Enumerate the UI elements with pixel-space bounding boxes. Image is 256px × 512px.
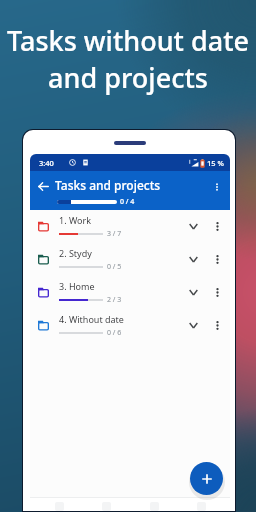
button[interactable]: Navigation item	[88, 502, 124, 511]
button[interactable]: More options	[205, 243, 229, 276]
button[interactable]: Expand	[180, 210, 206, 243]
button[interactable]: Expand	[180, 309, 206, 342]
staticText: and projects	[48, 59, 208, 96]
button[interactable]: More options	[205, 276, 229, 309]
button[interactable]: More options	[205, 309, 229, 342]
button[interactable]: Expand	[180, 276, 206, 309]
staticText: 1. Work	[59, 214, 92, 226]
staticText: 0 / 4	[120, 197, 135, 207]
button[interactable]: Navigation item	[183, 502, 219, 511]
staticText: Tasks and projects	[55, 177, 161, 193]
staticText: 3 / 7	[107, 229, 122, 239]
staticText: 2. Stydy	[59, 247, 92, 259]
staticText: 3:40	[39, 158, 54, 168]
button[interactable]: 3. Home	[30, 276, 230, 309]
staticText: 2 / 3	[107, 295, 122, 305]
button[interactable]: 1. Work	[30, 210, 230, 243]
button[interactable]: Expand	[180, 243, 206, 276]
button[interactable]: Navigation item	[41, 502, 77, 511]
staticText: 0 / 6	[107, 328, 122, 338]
button[interactable]: Add task	[190, 462, 223, 495]
staticText: 3. Home	[59, 280, 95, 292]
staticText: Tasks without date	[7, 22, 249, 59]
button[interactable]: 2. Stydy	[30, 243, 230, 276]
staticText: 4. Without date	[59, 313, 124, 325]
button[interactable]: Back	[31, 174, 56, 199]
button[interactable]: Navigation item	[136, 502, 172, 511]
button[interactable]: More options	[204, 174, 229, 199]
staticText: 15 %	[207, 158, 224, 168]
staticText: 0 / 5	[107, 262, 122, 272]
button[interactable]: More options	[205, 210, 229, 243]
button[interactable]: 4. Without date	[30, 309, 230, 342]
